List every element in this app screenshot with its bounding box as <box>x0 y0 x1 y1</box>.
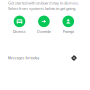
staticText: Get started with on-board stay to dismis… <box>8 0 79 11</box>
staticText: Prompt <box>63 29 74 34</box>
button[interactable]: Override <box>32 16 56 34</box>
button[interactable]: Settings <box>70 54 78 62</box>
staticText: Override <box>37 29 51 34</box>
button[interactable]: Prompt <box>56 16 80 34</box>
staticText: Dismiss <box>13 29 26 34</box>
staticText: Messages for today <box>7 56 39 60</box>
button[interactable]: Dismiss <box>7 16 32 34</box>
